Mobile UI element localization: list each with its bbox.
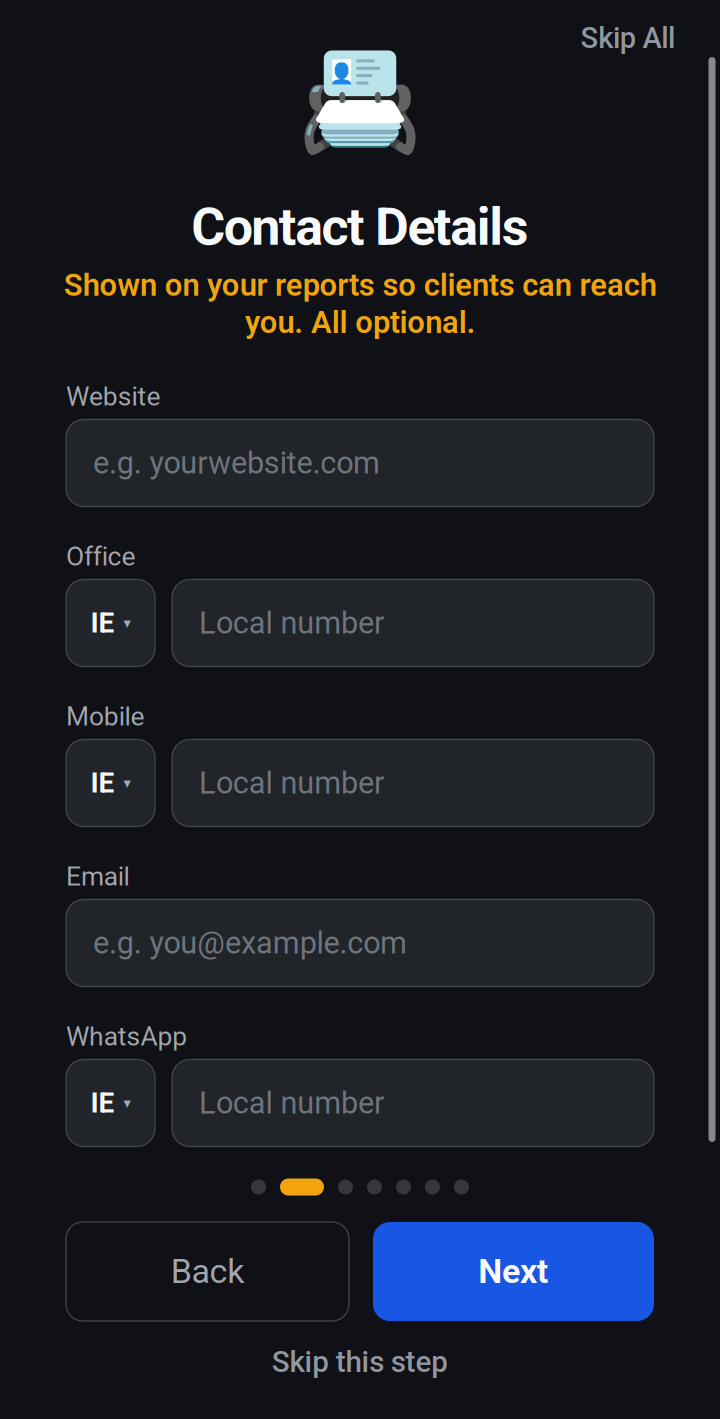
staticText: e.g. you@example.com: [93, 925, 407, 961]
staticText: Skip All: [580, 21, 675, 55]
staticText: WhatsApp: [66, 1021, 187, 1052]
staticText: Website: [66, 381, 160, 412]
button[interactable]: IE: [66, 579, 155, 666]
staticText: Back: [171, 1252, 244, 1291]
staticText: ▾: [123, 1094, 130, 1112]
staticText: e.g. yourwebsite.com: [93, 445, 380, 481]
button[interactable]: Back: [66, 1222, 349, 1321]
staticText: Next: [478, 1252, 549, 1291]
staticText: Contact Details: [191, 196, 529, 257]
button[interactable]: Skip this step: [272, 1321, 448, 1388]
button[interactable]: Next: [373, 1222, 654, 1321]
staticText: Local number: [199, 1085, 384, 1121]
staticText: Local number: [199, 605, 384, 641]
staticText: Skip this step: [272, 1345, 448, 1379]
staticText: IE: [91, 607, 114, 639]
staticText: IE: [91, 1087, 114, 1119]
staticText: Office: [66, 541, 135, 572]
staticText: Mobile: [66, 701, 144, 732]
staticText: Local number: [199, 765, 384, 801]
staticText: ▾: [123, 614, 130, 632]
button[interactable]: IE: [66, 1059, 155, 1146]
button[interactable]: Skip All: [580, 16, 720, 60]
staticText: 📇: [297, 41, 423, 159]
staticText: ▾: [123, 774, 130, 792]
staticText: IE: [91, 767, 114, 799]
staticText: Shown on your reports so clients can rea…: [64, 267, 656, 340]
staticText: Email: [66, 861, 130, 892]
button[interactable]: IE: [66, 739, 155, 826]
